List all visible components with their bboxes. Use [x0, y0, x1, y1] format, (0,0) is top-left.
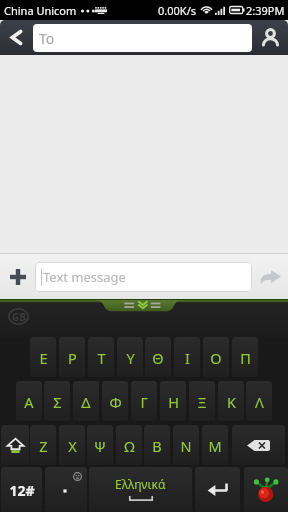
button[interactable]: Hide keyboard — [96, 300, 182, 312]
staticText: Τ — [97, 348, 106, 368]
staticText: Ξ — [197, 392, 207, 412]
button[interactable]: Λ — [246, 381, 272, 421]
staticText: Ε — [39, 348, 48, 368]
staticText: Ρ — [68, 348, 77, 368]
staticText: 12# — [9, 481, 35, 500]
button[interactable]: Ο — [203, 337, 229, 377]
staticText: Δ — [81, 392, 91, 412]
staticText: Ν — [180, 436, 192, 456]
button[interactable]: Ξ — [189, 381, 215, 421]
staticText: Β — [152, 436, 162, 456]
button[interactable]: Η — [160, 381, 186, 421]
button[interactable]: Θ — [145, 337, 171, 377]
staticText: Text message — [43, 268, 126, 286]
staticText: Κ — [227, 392, 236, 412]
button[interactable]: Γ — [131, 381, 157, 421]
staticText: Π — [240, 348, 251, 368]
button[interactable]: Α — [16, 381, 42, 421]
staticText: Ζ — [39, 436, 48, 456]
button[interactable]: Ι — [174, 337, 200, 377]
button[interactable]: Enter — [195, 467, 240, 512]
staticText: Μ — [208, 436, 222, 456]
staticText: China Unicom — [4, 3, 77, 18]
staticText: Η — [168, 392, 179, 412]
button[interactable]: Ρ — [59, 337, 85, 377]
staticText: Ψ — [94, 436, 106, 456]
button[interactable]: Add attachment — [0, 254, 35, 300]
staticText: Χ — [68, 436, 77, 456]
button[interactable]: Change theme — [244, 467, 288, 512]
staticText: Ελληνικά — [115, 476, 166, 492]
button[interactable]: Ψ — [87, 425, 113, 465]
staticText: Γ — [140, 392, 148, 412]
button[interactable]: Text message — [35, 262, 252, 292]
staticText: Σ — [53, 392, 62, 412]
button[interactable]: Back — [0, 20, 33, 55]
button[interactable]: Κ — [218, 381, 244, 421]
staticText: Θ — [152, 348, 164, 368]
button[interactable]: Ζ — [30, 425, 56, 465]
button[interactable]: 12# — [1, 467, 42, 512]
staticText: Υ — [126, 348, 135, 368]
button[interactable]: Π — [232, 337, 258, 377]
staticText: 0.00K/s — [158, 3, 196, 18]
button[interactable]: Φ — [102, 381, 128, 421]
button[interactable]: Period — [45, 467, 87, 512]
staticText: To — [39, 29, 55, 48]
button[interactable]: Ελληνικά — [89, 467, 192, 512]
button[interactable]: Ν — [173, 425, 199, 465]
staticText: GB — [12, 310, 26, 324]
staticText: Α — [24, 392, 34, 412]
button[interactable]: Send — [252, 254, 288, 300]
button[interactable]: Backspace — [232, 425, 285, 465]
button[interactable]: Υ — [117, 337, 143, 377]
button[interactable]: Τ — [88, 337, 114, 377]
button[interactable]: Β — [144, 425, 170, 465]
staticText: Ω — [124, 436, 135, 456]
staticText: Φ — [109, 392, 122, 412]
staticText: Λ — [255, 392, 264, 412]
button[interactable]: GO Keyboard menu — [8, 308, 29, 325]
button[interactable]: Ε — [30, 337, 56, 377]
staticText: Ι — [185, 348, 190, 368]
button[interactable]: Ω — [116, 425, 142, 465]
button[interactable]: Shift — [1, 425, 29, 465]
button[interactable]: To — [33, 24, 252, 52]
button[interactable]: Δ — [73, 381, 99, 421]
staticText: Ο — [210, 348, 222, 368]
button[interactable]: Μ — [202, 425, 228, 465]
button[interactable]: Contacts — [252, 20, 288, 55]
button[interactable]: Σ — [44, 381, 70, 421]
button[interactable]: Χ — [59, 425, 85, 465]
staticText: 2:39PM — [246, 3, 285, 18]
